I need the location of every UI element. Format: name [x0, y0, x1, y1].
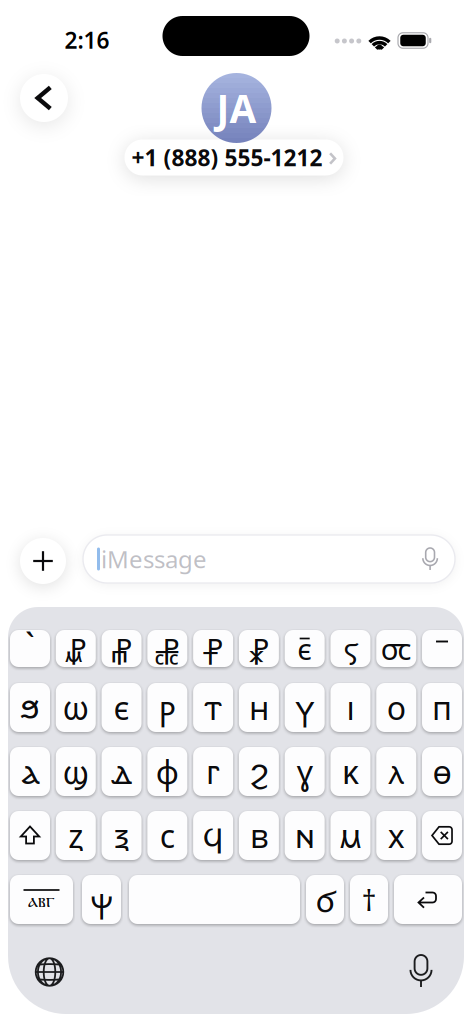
button[interactable]: ϭ	[306, 875, 344, 924]
button[interactable]: ⲏ	[239, 683, 279, 732]
staticText: ⳪	[381, 628, 412, 668]
staticText: ⳥	[65, 628, 87, 668]
button[interactable]: ⳩	[239, 630, 279, 667]
staticText: `	[25, 621, 35, 668]
button[interactable]	[422, 811, 462, 860]
staticText: ⲏ	[249, 686, 269, 729]
staticText: +1 (888) 555-1212	[131, 142, 322, 172]
staticText: ϥ	[203, 817, 224, 854]
staticText: †	[361, 879, 376, 919]
button[interactable]: ⲋ	[330, 630, 370, 667]
staticText: ⳧	[154, 628, 180, 668]
button[interactable]: ⲛ	[285, 811, 325, 860]
button[interactable]: ⲣ	[147, 683, 187, 732]
staticText: ⲫ	[156, 750, 179, 793]
button[interactable]: ⳨	[193, 630, 233, 667]
button[interactable]: ⳧	[147, 630, 187, 667]
staticText: ⲧ	[204, 686, 222, 729]
staticText: ⲩ	[297, 686, 313, 729]
staticText: ϩ	[249, 753, 268, 790]
button[interactable]: `	[10, 630, 50, 667]
button[interactable]: ⲝ	[102, 811, 142, 860]
button[interactable]	[422, 630, 462, 667]
button[interactable]: ⲁⲃⲅ	[10, 875, 73, 924]
staticText: ⲣ	[159, 686, 176, 729]
button[interactable]: ⲭ	[376, 811, 416, 860]
button[interactable]: ⲕ	[330, 747, 370, 796]
staticText: ɣ	[297, 750, 313, 793]
button[interactable]: ⲙ	[330, 811, 370, 860]
staticText: ⳩	[249, 628, 269, 668]
staticText: ⲯ	[90, 878, 112, 921]
staticText: ⲅ	[206, 750, 220, 793]
button[interactable]: ⲇ	[102, 747, 142, 796]
staticText: ⲱ	[63, 686, 89, 729]
staticText: ⲁⲃⲅ	[28, 891, 55, 911]
button[interactable]: ⲫ	[147, 747, 187, 796]
staticText: ⲁ	[21, 750, 39, 793]
staticText: ⲛ	[295, 814, 315, 857]
staticText: JA	[216, 82, 256, 134]
staticText: ⲭ	[388, 814, 405, 857]
button[interactable]: ⲟ	[376, 683, 416, 732]
button[interactable]: ⲍ	[56, 811, 96, 860]
staticText: ⲉ	[114, 686, 130, 729]
button[interactable]: ⲧ	[193, 683, 233, 732]
button[interactable]: ⲉ	[285, 630, 325, 667]
staticText: ⲕ	[342, 750, 359, 793]
button[interactable]: ⲉ	[102, 683, 142, 732]
button[interactable]: ⲃ	[239, 811, 279, 860]
staticText: ⲥ	[160, 814, 175, 857]
button[interactable]: ⲗ	[376, 747, 416, 796]
button[interactable]: ⲓ	[330, 683, 370, 732]
staticText: ⲙ	[338, 814, 362, 857]
staticText: ⲡ	[432, 686, 452, 729]
button[interactable]: ϥ	[193, 811, 233, 860]
button[interactable]: ⲩ	[285, 683, 325, 732]
button[interactable]: ⳥	[56, 630, 96, 667]
staticText: ⲉ	[297, 628, 312, 668]
staticText: ϣ	[63, 750, 89, 793]
button[interactable]: ϣ	[56, 747, 96, 796]
staticText: ⲝ	[114, 814, 129, 857]
button[interactable]: ⲱ	[56, 683, 96, 732]
staticText: ⳦	[111, 628, 132, 668]
button[interactable]: ⳦	[102, 630, 142, 667]
button[interactable]: †	[350, 875, 388, 924]
button[interactable]	[33, 956, 65, 988]
staticText: ⲑ	[432, 750, 451, 793]
staticText: 2:16	[64, 25, 109, 55]
button[interactable]	[394, 875, 462, 924]
button[interactable]	[405, 953, 437, 989]
staticText: ϧ	[20, 689, 40, 726]
button[interactable]: ɣ	[285, 747, 325, 796]
staticText: ⲇ	[111, 750, 132, 793]
button[interactable]: ⳪	[376, 630, 416, 667]
button[interactable]: ⲡ	[422, 683, 462, 732]
staticText: ⳨	[203, 628, 223, 668]
button[interactable]: ⲁ	[10, 747, 50, 796]
button[interactable]: ϧ	[10, 683, 50, 732]
staticText: ⲓ	[346, 686, 354, 729]
button[interactable]	[20, 74, 68, 122]
staticText: ⲃ	[250, 814, 268, 857]
button[interactable]: ϩ	[239, 747, 279, 796]
staticText: ⲟ	[387, 686, 406, 729]
staticText: iMessage	[101, 543, 207, 575]
button[interactable]: +1 (888) 555-1212	[116, 53, 356, 193]
button[interactable]	[10, 811, 50, 860]
button[interactable]: ⲥ	[147, 811, 187, 860]
staticText: ϭ	[315, 878, 334, 921]
button[interactable]: ⲅ	[193, 747, 233, 796]
button[interactable]: iMessage	[83, 535, 455, 583]
staticText: ⲍ	[68, 814, 83, 857]
staticText: ⲋ	[343, 628, 357, 668]
staticText: ⲗ	[389, 750, 404, 793]
button[interactable]: ⲑ	[422, 747, 462, 796]
button[interactable]	[129, 875, 300, 924]
button[interactable]: ⲯ	[82, 875, 121, 924]
button[interactable]	[20, 538, 66, 584]
